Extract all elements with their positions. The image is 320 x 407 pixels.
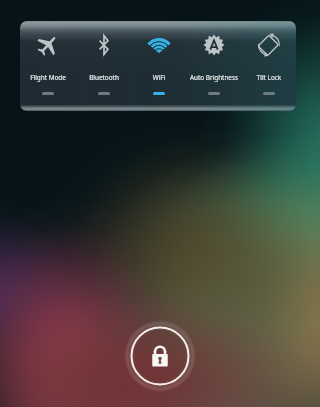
- button[interactable]: Auto Brightness: [186, 21, 241, 111]
- button[interactable]: WiFi: [131, 21, 186, 111]
- button[interactable]: Flight Mode: [20, 21, 76, 111]
- button[interactable]: Tilt Lock: [241, 21, 296, 111]
- staticText: Tilt Lock: [234, 73, 296, 81]
- staticText: Bluetooth: [69, 73, 139, 81]
- button[interactable]: Unlock: [130, 326, 190, 386]
- button[interactable]: Flight Mode: [20, 21, 296, 111]
- staticText: WiFi: [124, 73, 194, 81]
- button[interactable]: Bluetooth: [76, 21, 131, 111]
- staticText: Flight Mode: [20, 73, 83, 81]
- staticText: Auto Brightness: [179, 73, 249, 81]
